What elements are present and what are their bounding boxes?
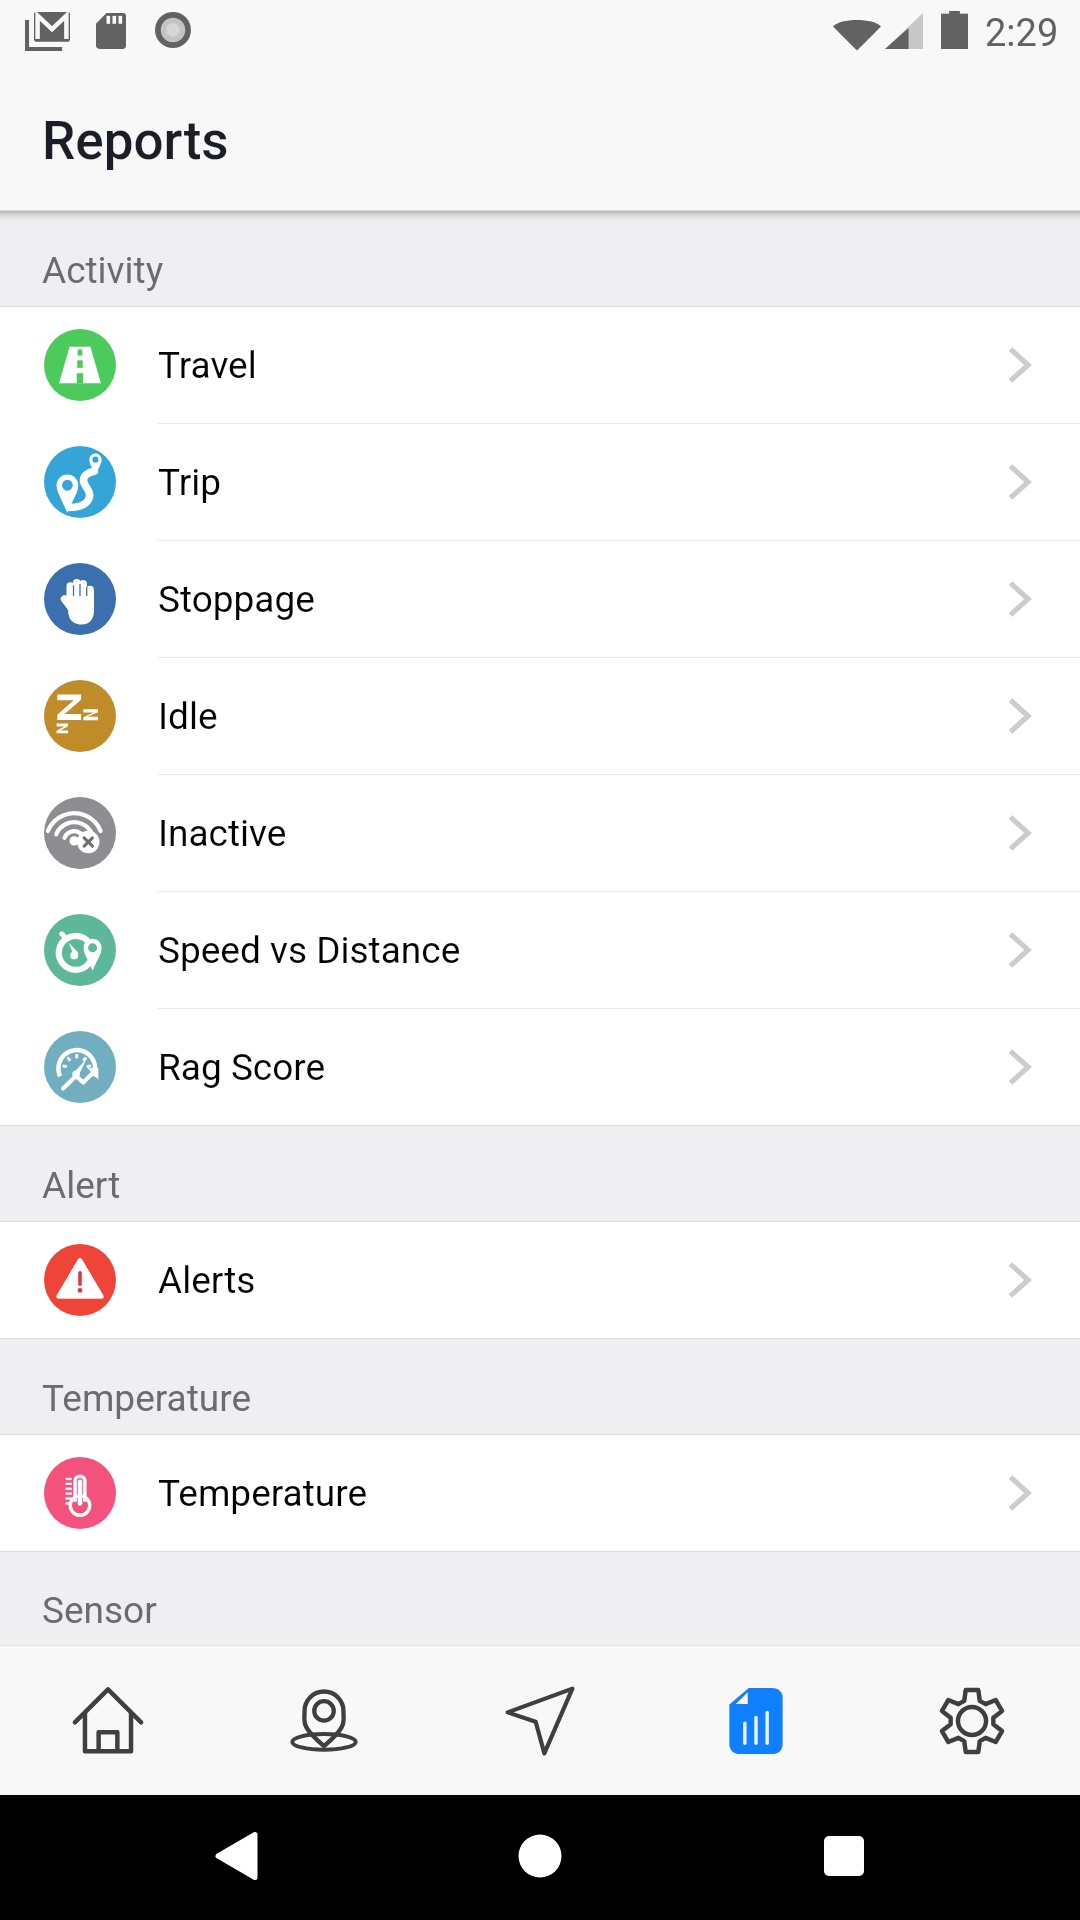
button[interactable]: Navigate	[432, 1646, 648, 1795]
button[interactable]: Trip	[0, 424, 1080, 540]
button[interactable]: Temperature	[0, 1435, 1080, 1551]
staticText: Speed vs Distance	[158, 929, 461, 972]
button[interactable]: Home	[0, 1646, 216, 1795]
button[interactable]: Inactive	[0, 775, 1080, 891]
button[interactable]: Settings	[864, 1646, 1080, 1795]
staticText: Temperature	[42, 1377, 252, 1420]
staticText: Alert	[42, 1164, 121, 1207]
staticText: Activity	[42, 249, 164, 292]
staticText: Inactive	[158, 812, 287, 855]
staticText: Alerts	[158, 1259, 256, 1302]
staticText: Stoppage	[158, 578, 315, 621]
staticText: Reports	[42, 110, 229, 172]
staticText: Idle	[158, 695, 218, 738]
staticText: Trip	[158, 461, 222, 504]
button[interactable]: Rag Score	[0, 1009, 1080, 1125]
staticText: Temperature	[158, 1472, 368, 1515]
button[interactable]: Travel	[0, 307, 1080, 423]
button[interactable]: Idle	[0, 658, 1080, 774]
button[interactable]: Speed vs Distance	[0, 892, 1080, 1008]
staticText: Sensor	[42, 1589, 157, 1632]
button[interactable]: Reports	[648, 1646, 864, 1795]
button[interactable]: Places	[216, 1646, 432, 1795]
staticText: 2:29	[985, 11, 1059, 56]
staticText: Rag Score	[158, 1046, 326, 1089]
button[interactable]: Alerts	[0, 1222, 1080, 1338]
button[interactable]: Stoppage	[0, 541, 1080, 657]
staticText: Travel	[158, 344, 257, 387]
